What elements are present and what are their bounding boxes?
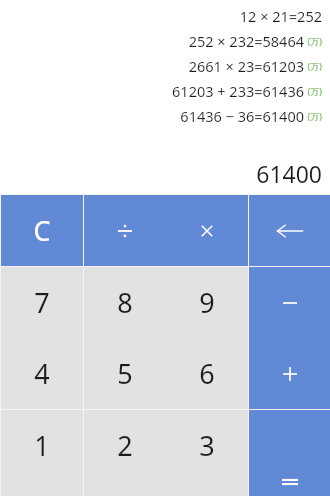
staticText: 2661 × 23=61203 <box>188 56 304 76</box>
staticText: 61203 + 233=61436 <box>172 81 304 101</box>
staticText: 6 <box>199 355 215 392</box>
button[interactable]: 2661 × 23=61203 <box>6 53 322 78</box>
button[interactable]: 8 <box>84 267 166 338</box>
staticText: 1 <box>34 427 50 464</box>
staticText: C <box>33 212 51 249</box>
button[interactable]: 7 <box>1 267 83 338</box>
button[interactable]: 12 × 21=252 <box>6 3 322 28</box>
button[interactable]: Multiply <box>166 195 248 266</box>
button[interactable]: Clear <box>1 195 83 266</box>
button[interactable]: 61436 − 36=61400 <box>6 103 322 128</box>
staticText: (万) <box>307 85 322 97</box>
staticText: 3 <box>199 427 215 464</box>
staticText: 12 × 21=252 <box>239 6 322 26</box>
staticText: (万) <box>307 60 322 72</box>
staticText: 5 <box>117 355 133 392</box>
button[interactable]: Backspace <box>249 195 330 266</box>
staticText: 61400 <box>256 158 322 188</box>
button[interactable]: 2 <box>84 410 166 481</box>
button[interactable]: Equals <box>249 410 330 496</box>
staticText: (万) <box>307 35 322 47</box>
button[interactable]: 4 <box>1 338 83 409</box>
button[interactable]: 3 <box>166 410 248 481</box>
button[interactable]: 252 × 232=58464 <box>6 28 322 53</box>
button[interactable]: Plus <box>249 338 330 409</box>
button[interactable]: 5 <box>84 338 166 409</box>
button[interactable]: 6 <box>166 338 248 409</box>
button[interactable]: 1 <box>1 410 83 481</box>
staticText: 7 <box>34 284 50 321</box>
staticText: (万) <box>307 110 322 122</box>
staticText: 8 <box>117 284 133 321</box>
button[interactable]: Divide <box>84 195 166 266</box>
staticText: 61436 − 36=61400 <box>180 106 304 126</box>
staticText: 252 × 232=58464 <box>188 31 304 51</box>
staticText: 2 <box>117 427 133 464</box>
button[interactable]: Minus <box>249 267 330 338</box>
staticText: 4 <box>34 355 50 392</box>
button[interactable]: 61203 + 233=61436 <box>6 78 322 103</box>
button[interactable]: 9 <box>166 267 248 338</box>
staticText: 9 <box>199 284 215 321</box>
